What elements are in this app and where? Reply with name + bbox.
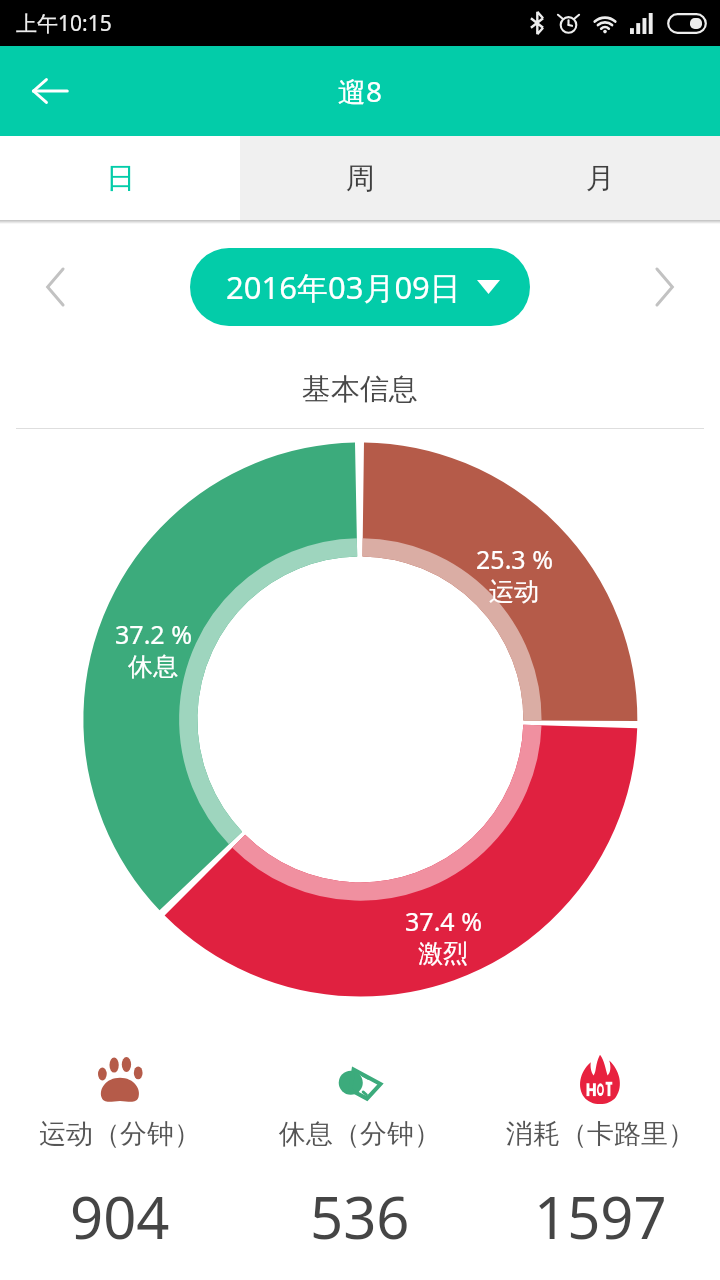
button[interactable]: 休息（分钟）: [240, 1053, 480, 1256]
button[interactable]: Back: [20, 61, 80, 121]
button[interactable]: 周: [240, 136, 480, 220]
staticText: 激烈: [418, 938, 468, 969]
button[interactable]: 运动（分钟）: [0, 1053, 240, 1256]
staticText: 基本信息: [302, 371, 418, 408]
staticText: 2016年03月09日: [226, 266, 461, 308]
staticText: 周: [346, 160, 375, 197]
button[interactable]: 月: [480, 136, 720, 220]
staticText: 536: [310, 1177, 410, 1256]
staticText: 运动: [489, 576, 539, 607]
staticText: 37.2 %: [115, 617, 192, 651]
staticText: 休息: [128, 651, 178, 682]
button[interactable]: 日: [0, 136, 240, 220]
staticText: 消耗（卡路里）: [506, 1117, 695, 1151]
button[interactable]: Previous day: [26, 257, 86, 317]
staticText: 37.4 %: [405, 904, 482, 938]
staticText: 遛8: [338, 72, 383, 110]
button[interactable]: Next day: [634, 257, 694, 317]
staticText: 运动（分钟）: [39, 1117, 201, 1151]
staticText: 1597: [534, 1177, 667, 1256]
button[interactable]: 消耗（卡路里）: [480, 1053, 720, 1256]
staticText: 月: [586, 160, 615, 197]
staticText: 904: [70, 1177, 170, 1256]
staticText: 休息（分钟）: [279, 1117, 441, 1151]
staticText: 25.3 %: [476, 542, 553, 576]
staticText: 上午10:15: [16, 9, 112, 38]
button[interactable]: 2016年03月09日: [190, 248, 530, 326]
staticText: 日: [106, 160, 135, 197]
